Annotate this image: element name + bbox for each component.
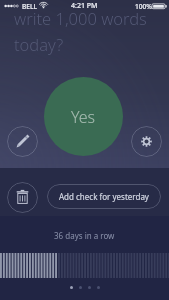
button[interactable]: Delete [7, 182, 38, 213]
staticText: 4:21 PM [71, 1, 98, 11]
button[interactable]: Edit [7, 126, 38, 157]
staticText: Yes [71, 106, 96, 128]
staticText: write 1,000 words today? [14, 7, 169, 56]
staticText: 100% [135, 2, 152, 11]
button[interactable]: Add check for yesterday [47, 184, 161, 209]
staticText: BELL [22, 2, 38, 11]
button[interactable]: Settings [131, 126, 162, 157]
staticText: 36 days in a row [54, 230, 115, 241]
staticText: Add check for yesterday [59, 191, 149, 202]
button[interactable]: Yes [44, 77, 123, 156]
